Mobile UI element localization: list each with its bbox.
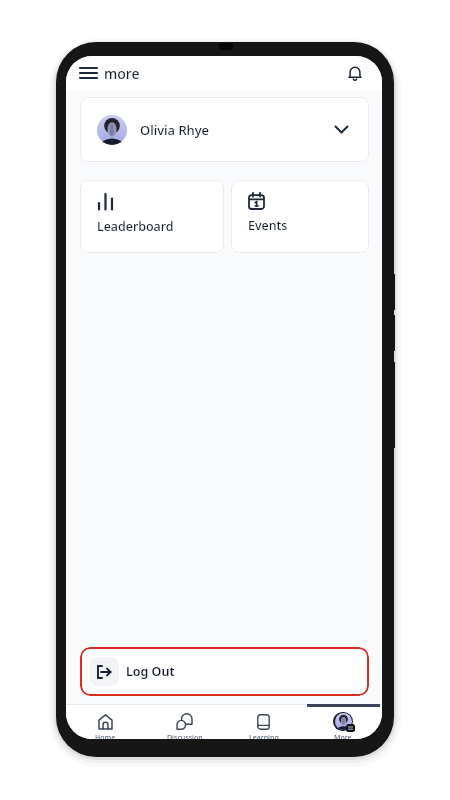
- button[interactable]: Olivia Rhye: [80, 97, 369, 162]
- button[interactable]: More: [303, 712, 382, 739]
- staticText: Olivia Rhye: [140, 121, 210, 139]
- staticText: Learning: [249, 733, 279, 739]
- button[interactable]: Leaderboard: [80, 180, 224, 253]
- button[interactable]: [75, 60, 101, 86]
- staticText: Home: [95, 733, 116, 739]
- button[interactable]: Home: [66, 712, 145, 739]
- button[interactable]: [344, 62, 366, 84]
- button[interactable]: Log Out: [80, 647, 369, 696]
- staticText: More: [334, 733, 352, 739]
- staticText: Discussion: [167, 733, 203, 739]
- button[interactable]: Learning: [224, 712, 303, 739]
- button[interactable]: Events: [231, 180, 369, 253]
- button[interactable]: Discussion: [145, 712, 224, 739]
- staticText: more: [104, 64, 140, 83]
- staticText: Leaderboard: [97, 218, 174, 235]
- staticText: Log Out: [126, 663, 175, 680]
- staticText: Events: [248, 217, 288, 234]
